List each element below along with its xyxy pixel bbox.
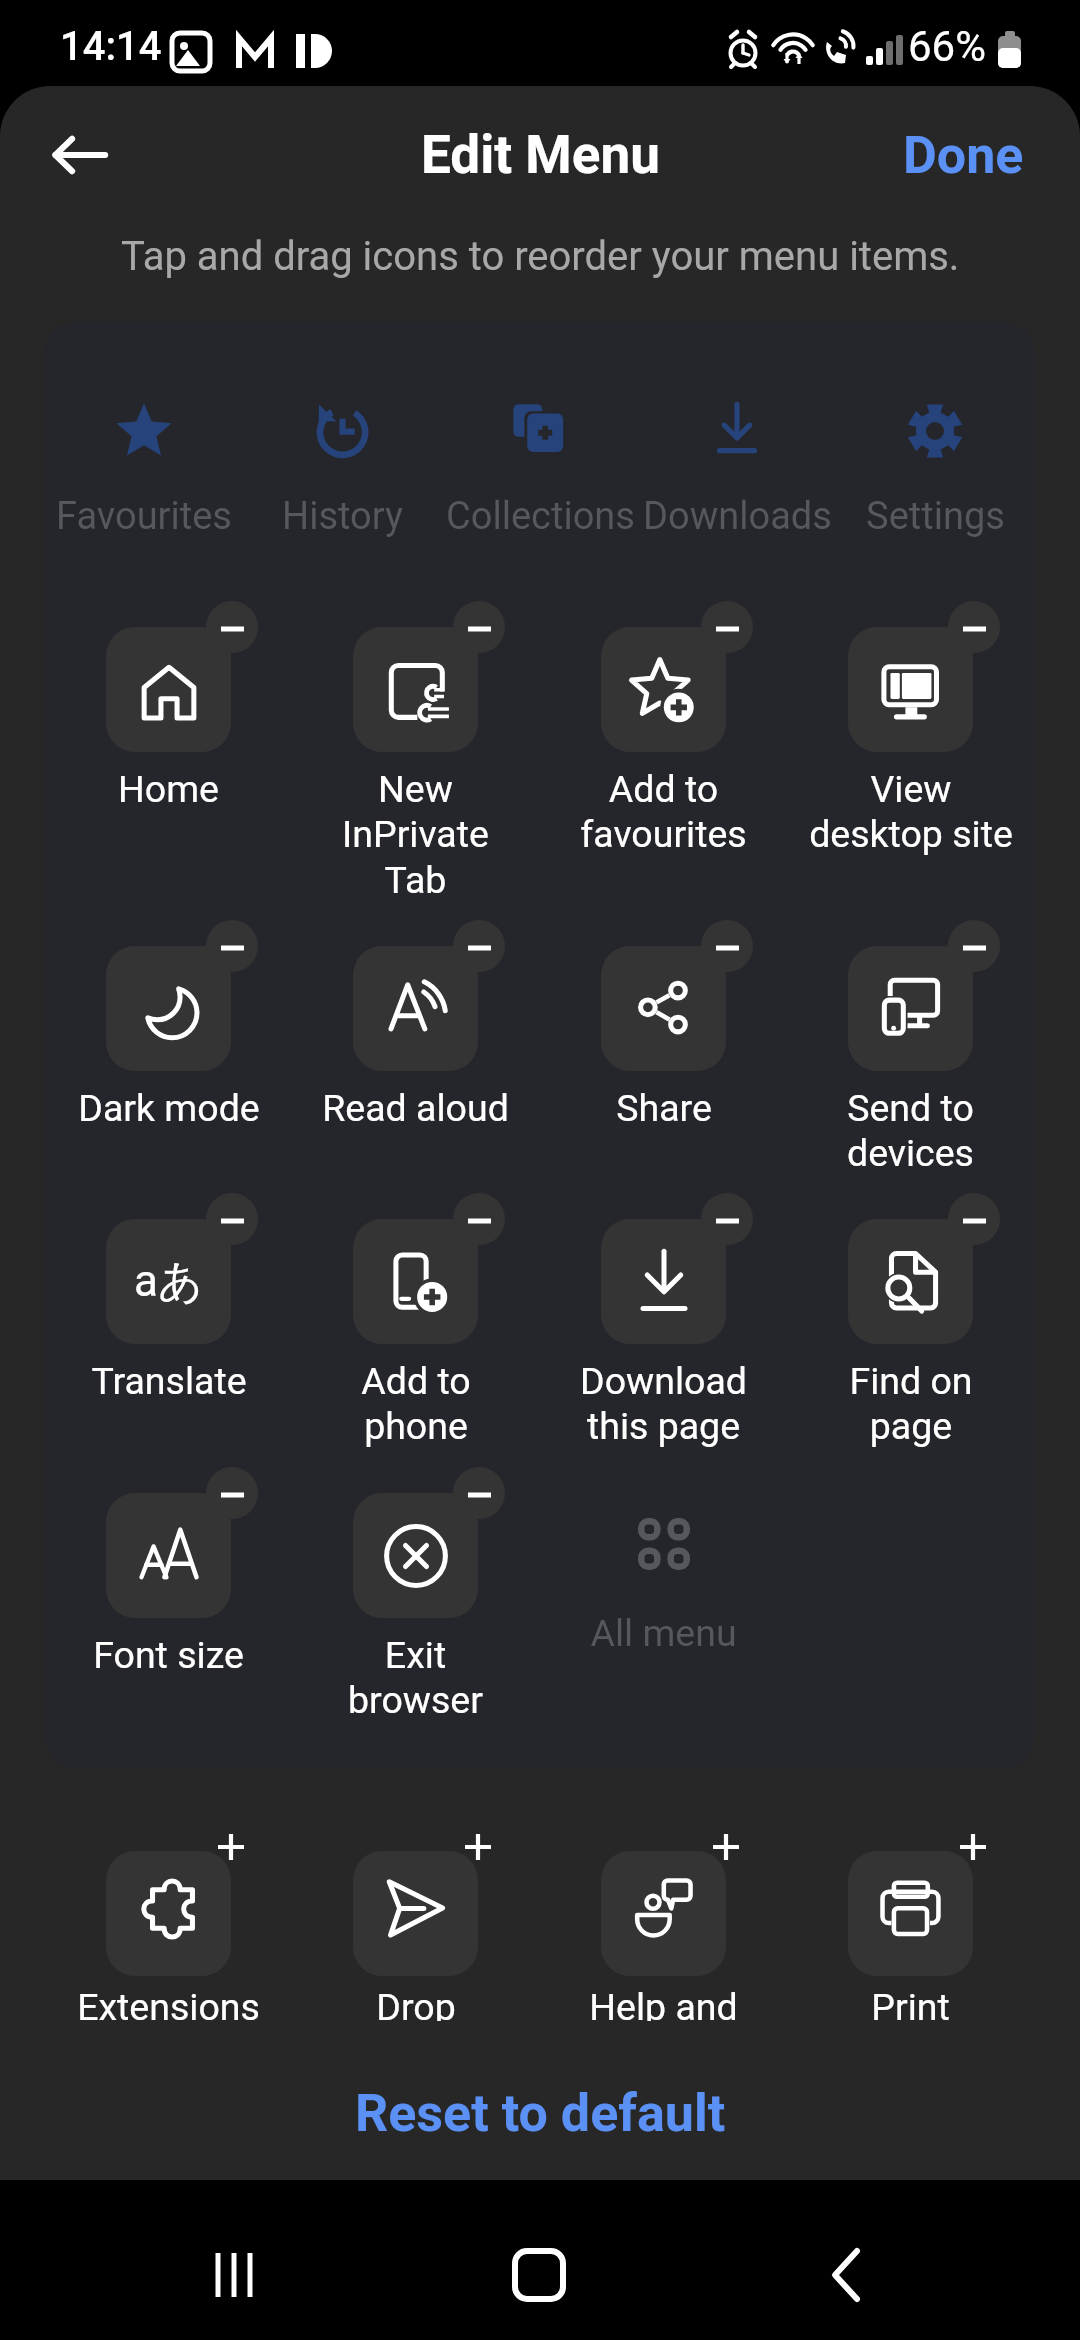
button[interactable]: Remove Font size [45, 1465, 292, 1833]
staticText: Dark mode [78, 1086, 260, 1130]
button[interactable]: Remove Find on page [787, 1191, 1034, 1559]
button[interactable] [836, 378, 1034, 538]
button[interactable]: Remove Dark mode [206, 920, 258, 972]
button[interactable]: Remove Add to favourites [701, 601, 753, 653]
staticText: Font size [93, 1633, 244, 1677]
staticText: Edit Menu [421, 124, 660, 186]
staticText: Send to devices [847, 1086, 974, 1176]
button[interactable] [638, 378, 836, 538]
staticText: Find on page [849, 1359, 973, 1449]
button[interactable]: Reset to default [330, 2068, 750, 2158]
staticText: Settings [866, 494, 1005, 539]
staticText: 14:14 [60, 23, 162, 70]
staticText: Tap and drag icons to reorder your menu … [121, 233, 960, 280]
staticText: Read aloud [322, 1086, 509, 1130]
button[interactable]: Remove Add to phone [453, 1193, 505, 1245]
button[interactable]: Remove Share [540, 918, 787, 1286]
staticText: Reset to default [355, 2083, 726, 2144]
staticText: Share [616, 1086, 712, 1130]
staticText: History [282, 494, 403, 539]
button[interactable]: Add Extensions [45, 1823, 292, 2021]
button[interactable]: Back [30, 105, 130, 205]
staticText: 66% [908, 22, 986, 71]
staticText: Help and [589, 1985, 738, 2021]
staticText: Home [118, 767, 219, 811]
button[interactable]: Remove Font size [206, 1467, 258, 1519]
button[interactable]: Add Drop [452, 1823, 504, 1873]
button[interactable]: Remove Add to phone [292, 1191, 539, 1559]
staticText: Exit browser [348, 1633, 483, 1723]
button[interactable]: Remove Download this page [540, 1191, 787, 1559]
button[interactable]: Remove Find on page [948, 1193, 1000, 1245]
button[interactable] [441, 378, 639, 538]
button[interactable]: Add Help and [540, 1823, 787, 2021]
staticText: View desktop site [809, 767, 1013, 857]
button[interactable]: Add Print [947, 1823, 999, 1873]
button[interactable]: Remove Exit browser [453, 1467, 505, 1519]
staticText: aあ [134, 1254, 203, 1309]
button[interactable]: Remove Dark mode [45, 918, 292, 1286]
button[interactable]: Remove Download this page [701, 1193, 753, 1245]
staticText: Drop [376, 1985, 456, 2021]
staticText: Done [903, 125, 1024, 186]
button[interactable]: Remove New InPrivate Tab [292, 599, 539, 967]
button[interactable]: aあ [45, 1191, 292, 1559]
button[interactable]: Remove View desktop site [787, 599, 1034, 967]
button[interactable]: Remove Translate [206, 1193, 258, 1245]
button[interactable] [45, 378, 243, 538]
button[interactable]: Add Drop [292, 1823, 539, 2021]
staticText: All menu [590, 1611, 737, 1655]
staticText: Translate [91, 1359, 247, 1403]
staticText: Downloads [643, 494, 832, 539]
staticText: Extensions [77, 1985, 260, 2021]
button[interactable]: Remove Home [45, 599, 292, 967]
button[interactable] [243, 378, 441, 538]
staticText: Add to favourites [580, 767, 747, 857]
staticText: Collections [446, 494, 635, 539]
button[interactable]: Remove Exit browser [292, 1465, 539, 1833]
staticText: Favourites [56, 494, 232, 539]
button[interactable]: Remove Send to devices [787, 918, 1034, 1286]
button[interactable]: Remove Read aloud [453, 920, 505, 972]
button[interactable]: Remove New InPrivate Tab [453, 601, 505, 653]
staticText: Print [871, 1985, 950, 2021]
button[interactable]: All menu [540, 1465, 787, 1833]
staticText: New InPrivate Tab [342, 767, 489, 903]
button[interactable]: Remove Read aloud [292, 918, 539, 1286]
button[interactable]: Done [872, 105, 1054, 205]
button[interactable]: Remove Home [206, 601, 258, 653]
button[interactable]: Add Help and [700, 1823, 752, 1873]
button[interactable]: Add Extensions [205, 1823, 257, 1873]
staticText: Download this page [580, 1359, 747, 1449]
button[interactable]: Remove Add to favourites [540, 599, 787, 967]
button[interactable]: Remove Share [701, 920, 753, 972]
button[interactable]: Remove View desktop site [948, 601, 1000, 653]
button[interactable]: Add Print [787, 1823, 1034, 2021]
button[interactable]: Remove Send to devices [948, 920, 1000, 972]
staticText: Add to phone [361, 1359, 471, 1449]
